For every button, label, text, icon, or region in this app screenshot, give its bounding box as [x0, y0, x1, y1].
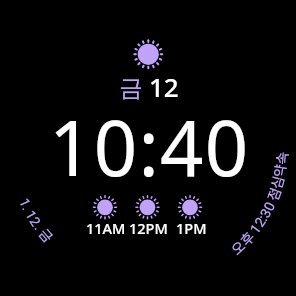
- staticText: 11AM: [86, 218, 126, 236]
- staticText: 12: [149, 69, 179, 104]
- button[interactable]: 11AM: [84, 218, 127, 236]
- button[interactable]: Calendar, Friday 12 January: [10, 190, 58, 238]
- button[interactable]: 12PM: [127, 218, 170, 236]
- button[interactable]: 1PM: [170, 218, 213, 236]
- staticText: 금: [119, 73, 143, 103]
- staticText: 12PM: [129, 218, 168, 236]
- staticText: 10:40: [49, 95, 250, 199]
- staticText: 1PM: [176, 218, 207, 236]
- button[interactable]: Next event, 12:30 PM lunch appointment: [226, 146, 292, 258]
- button[interactable]: 금: [118, 68, 181, 103]
- button[interactable]: Weather, sunny: [132, 38, 165, 71]
